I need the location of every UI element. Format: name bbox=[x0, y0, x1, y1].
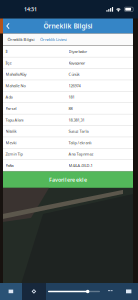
staticText: İlçe bbox=[5, 60, 11, 65]
staticText: Zemin Tip bbox=[5, 151, 22, 157]
staticText: Cünük bbox=[68, 72, 79, 77]
staticText: Diyarbakır bbox=[68, 49, 87, 54]
button[interactable]: Rotate bbox=[0, 283, 22, 300]
button[interactable]: Örneklik Listesi bbox=[37, 34, 70, 45]
button[interactable]: Picture in picture bbox=[119, 283, 138, 300]
staticText: Ana Taşınmaz bbox=[68, 151, 93, 157]
staticText: 18.381,31 bbox=[68, 117, 84, 122]
staticText: Mahalle/Köy bbox=[5, 72, 26, 77]
staticText: Favorilere ekle bbox=[49, 176, 87, 183]
button[interactable]: Settings bbox=[22, 283, 46, 300]
staticText: Örneklik Listesi bbox=[40, 37, 67, 42]
button[interactable]: Back bbox=[3, 19, 13, 33]
button[interactable]: Quality bbox=[102, 283, 119, 300]
staticText: Mahalle No bbox=[5, 83, 25, 88]
staticText: İl bbox=[5, 49, 7, 54]
staticText: 181 bbox=[68, 94, 74, 100]
staticText: Susuz Tarla bbox=[68, 129, 88, 134]
button[interactable]: Örneklik Bilgisi bbox=[5, 34, 37, 45]
staticText: Örneklik Bilgisi bbox=[7, 37, 34, 42]
staticText: Parsel bbox=[5, 106, 16, 111]
staticText: Nitelik bbox=[5, 129, 16, 134]
staticText: Pafta bbox=[5, 163, 13, 168]
staticText: 126974 bbox=[68, 83, 80, 88]
staticText: Kayapınar bbox=[68, 60, 85, 65]
staticText: Örneklik Bilgisi bbox=[43, 22, 92, 30]
staticText: 14:31 bbox=[24, 6, 37, 13]
staticText: 88 bbox=[68, 106, 72, 111]
staticText: Mevki bbox=[5, 140, 16, 145]
staticText: Ada bbox=[5, 94, 12, 100]
button[interactable]: Favorilere ekle bbox=[3, 171, 133, 188]
staticText: Tapu Alanı bbox=[5, 117, 23, 122]
staticText: Talip / ekranlı bbox=[68, 140, 91, 145]
staticText: M44-A-03-D-1 bbox=[68, 163, 92, 168]
